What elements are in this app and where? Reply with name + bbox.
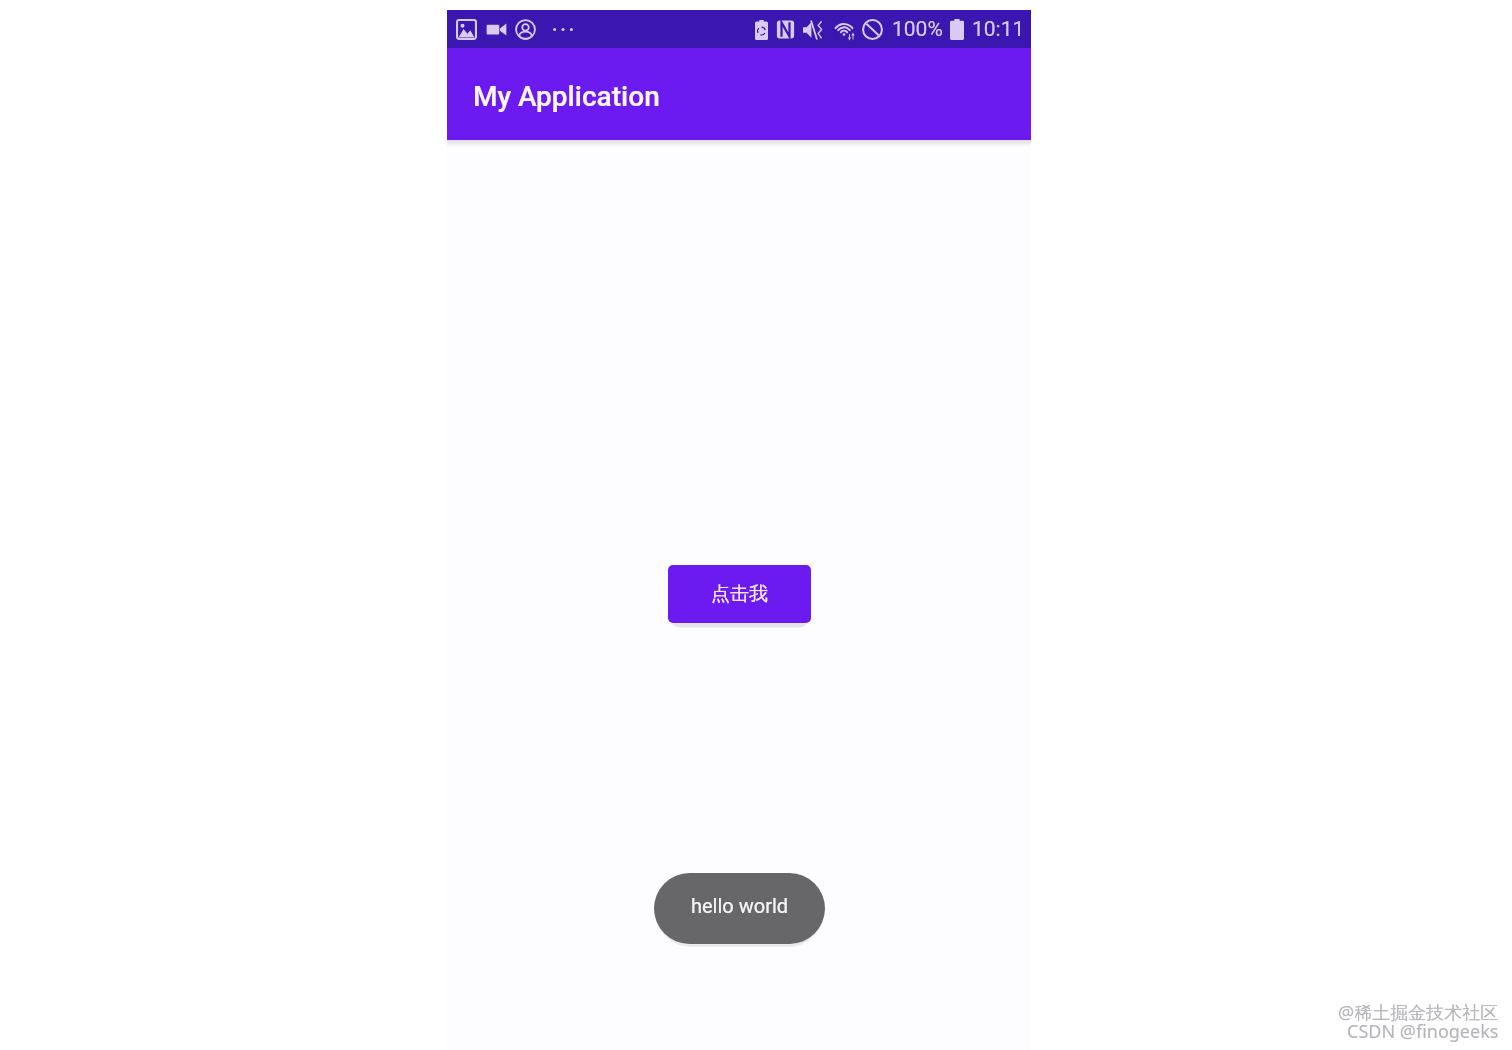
other: Battery full <box>950 19 964 40</box>
other: More notifications <box>553 19 573 40</box>
other: Do not disturb <box>862 19 883 40</box>
other: Wi-Fi <box>833 19 858 40</box>
staticText: 点击我 <box>711 582 768 606</box>
staticText: hello world <box>691 894 789 917</box>
other: Ringer vibrate <box>803 20 823 40</box>
staticText: 100% <box>892 17 943 42</box>
staticText: CSDN @finogeeks <box>1347 1019 1499 1044</box>
other: Screen recording <box>486 19 507 40</box>
staticText: @稀土掘金技术社区 <box>1338 1000 1499 1025</box>
other: Screenshot <box>456 19 477 40</box>
other: Account <box>515 19 536 40</box>
button[interactable]: 点击我 <box>668 565 811 623</box>
staticText: My Application <box>473 80 660 113</box>
other: NFC on <box>775 19 796 40</box>
other: Battery saver <box>755 20 768 40</box>
staticText: 10:11 <box>972 17 1025 42</box>
